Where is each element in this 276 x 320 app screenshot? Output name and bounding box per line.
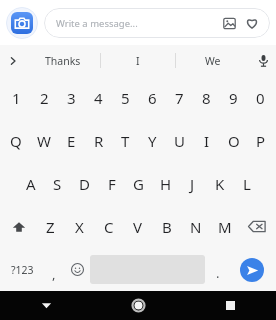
staticText: W [37, 131, 51, 151]
button[interactable]: N [181, 205, 210, 248]
button[interactable]: W [30, 119, 58, 162]
button[interactable]: 6 [139, 76, 166, 119]
button[interactable]: Voice input [250, 45, 276, 76]
staticText: 5 [121, 88, 130, 108]
button[interactable]: 1 [2, 76, 30, 119]
staticText: O [228, 131, 240, 151]
staticText: 2 [40, 88, 49, 108]
staticText: 8 [202, 88, 211, 108]
staticText: P [256, 131, 266, 151]
button[interactable]: , [43, 248, 65, 291]
button[interactable]: 0 [247, 76, 274, 119]
staticText: V [133, 217, 143, 237]
button[interactable]: P [247, 119, 274, 162]
button[interactable]: I [101, 45, 175, 76]
button[interactable]: Attach image [219, 13, 239, 33]
staticText: R [94, 131, 104, 151]
button[interactable]: Thanks [26, 45, 100, 76]
staticText: Z [46, 217, 55, 237]
button[interactable]: I [193, 119, 220, 162]
button[interactable]: J [179, 162, 206, 205]
button[interactable]: Emoji [65, 248, 90, 291]
button[interactable]: Expand suggestions [0, 45, 26, 76]
button[interactable]: Q [2, 119, 30, 162]
staticText: Write a message... [56, 17, 219, 30]
button[interactable]: 9 [220, 76, 247, 119]
button[interactable]: Like [242, 13, 262, 33]
staticText: L [243, 174, 251, 194]
button[interactable]: 7 [166, 76, 193, 119]
button[interactable]: Backspace [239, 205, 274, 248]
button[interactable]: Camera [6, 7, 38, 39]
button[interactable]: Write a message... [44, 8, 270, 38]
staticText: We [205, 54, 221, 68]
button[interactable]: We [176, 45, 250, 76]
button[interactable]: Home [92, 291, 184, 320]
button[interactable]: Z [36, 205, 65, 248]
button[interactable]: D [71, 162, 98, 205]
button[interactable]: 8 [193, 76, 220, 119]
staticText: . [216, 264, 220, 282]
button[interactable]: X [65, 205, 94, 248]
button[interactable]: U [166, 119, 193, 162]
staticText: ?123 [11, 263, 34, 277]
button[interactable]: C [94, 205, 123, 248]
button[interactable]: 4 [85, 76, 112, 119]
button[interactable]: Recent apps [184, 291, 276, 320]
button[interactable]: K [206, 162, 233, 205]
staticText: N [190, 217, 202, 237]
button[interactable]: 3 [58, 76, 85, 119]
staticText: U [174, 131, 185, 151]
staticText: S [53, 174, 62, 194]
staticText: B [162, 217, 172, 237]
button[interactable]: T [112, 119, 139, 162]
staticText: H [160, 174, 172, 194]
staticText: 0 [256, 88, 265, 108]
staticText: Thanks [45, 54, 81, 68]
button[interactable]: G [125, 162, 152, 205]
staticText: K [215, 174, 225, 194]
button[interactable]: B [152, 205, 181, 248]
button[interactable]: R [85, 119, 112, 162]
staticText: D [79, 174, 90, 194]
staticText: 6 [148, 88, 157, 108]
button[interactable]: 2 [30, 76, 58, 119]
button[interactable]: H [152, 162, 179, 205]
staticText: E [67, 131, 76, 151]
button[interactable]: Send [230, 248, 274, 291]
button[interactable]: Shift [2, 205, 36, 248]
staticText: 4 [94, 88, 103, 108]
staticText: M [218, 217, 232, 237]
staticText: X [75, 217, 84, 237]
button[interactable]: E [58, 119, 85, 162]
button[interactable]: Hide keyboard [0, 291, 92, 320]
button[interactable]: . [205, 248, 230, 291]
button[interactable]: S [44, 162, 71, 205]
staticText: Y [148, 131, 157, 151]
button[interactable]: L [233, 162, 260, 205]
button[interactable]: ?123 [2, 248, 43, 291]
button[interactable]: 5 [112, 76, 139, 119]
staticText: J [190, 174, 195, 194]
staticText: , [52, 265, 56, 283]
staticText: A [26, 174, 36, 194]
staticText: 7 [175, 88, 184, 108]
staticText: T [121, 131, 130, 151]
staticText: 3 [67, 88, 76, 108]
button[interactable]: Y [139, 119, 166, 162]
staticText: F [108, 174, 116, 194]
staticText: C [104, 217, 114, 237]
button[interactable]: F [98, 162, 125, 205]
button[interactable]: A [17, 162, 44, 205]
staticText: 1 [12, 88, 21, 108]
staticText: 9 [229, 88, 238, 108]
staticText: G [133, 174, 144, 194]
staticText: Q [10, 131, 22, 151]
staticText: I [136, 54, 140, 68]
button[interactable]: M [210, 205, 239, 248]
staticText: I [204, 131, 210, 151]
button[interactable]: V [123, 205, 152, 248]
button[interactable]: O [220, 119, 247, 162]
